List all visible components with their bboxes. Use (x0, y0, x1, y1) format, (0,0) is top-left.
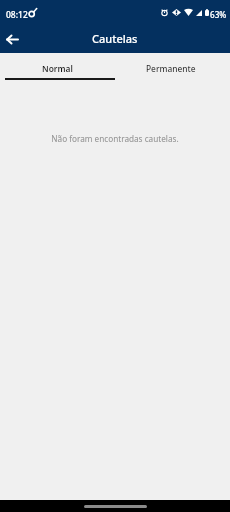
button[interactable]: Permanente (115, 53, 230, 80)
staticText: 63% (210, 9, 227, 20)
staticText: Permanente (146, 63, 196, 74)
button[interactable]: Back (0, 27, 24, 51)
staticText: 08:12 (6, 9, 28, 21)
staticText: Não foram encontradas cautelas. (0, 133, 230, 144)
staticText: Normal (42, 63, 73, 74)
staticText: Cautelas (92, 31, 138, 46)
button[interactable]: Normal (0, 53, 115, 80)
